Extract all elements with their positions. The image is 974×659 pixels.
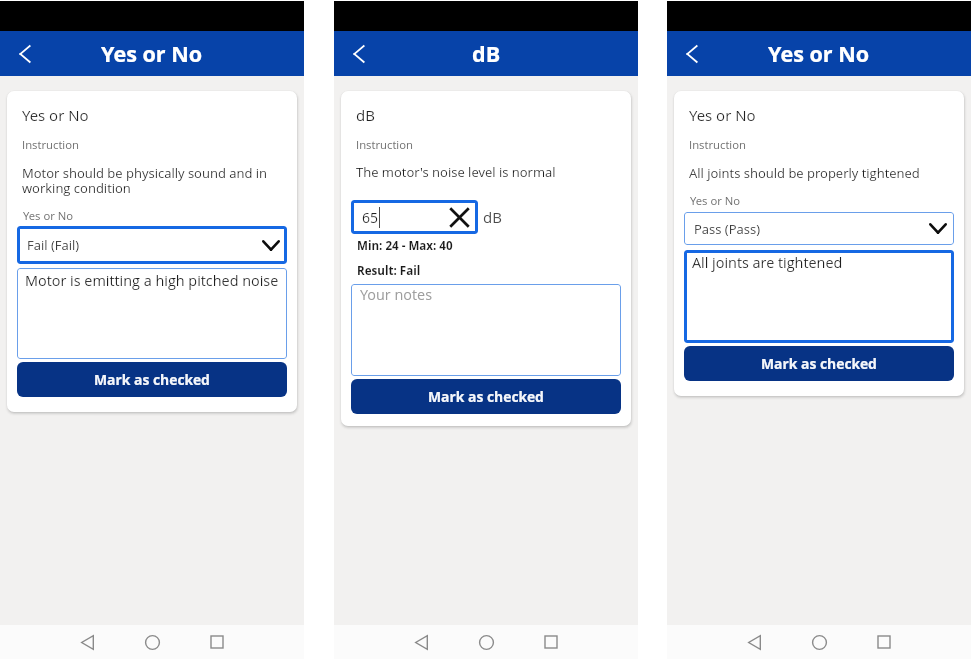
staticText: Instruction <box>22 137 79 152</box>
staticText: Min: 24 - Max: 40 <box>357 238 453 254</box>
staticText: Yes or No <box>690 193 741 208</box>
staticText: Motor is emitting a high pitched noise <box>25 271 279 291</box>
staticText: Yes or No <box>689 105 756 125</box>
staticText: Instruction <box>356 137 413 152</box>
staticText: Mark as checked <box>761 354 877 373</box>
staticText: Yes or No <box>22 105 89 125</box>
staticText: Result: Fail <box>357 263 421 279</box>
button[interactable]: Back <box>334 31 384 76</box>
button[interactable]: Your notes <box>351 284 621 376</box>
staticText: Yes or No <box>23 208 74 223</box>
button[interactable]: Mark as checked <box>684 346 954 381</box>
button[interactable]: Mark as checked <box>351 379 621 414</box>
button[interactable]: Back <box>0 31 50 76</box>
staticText: All joints are tightened <box>692 253 843 273</box>
button[interactable]: Home <box>471 627 501 657</box>
staticText: dB <box>472 39 501 68</box>
button[interactable]: 65 <box>351 200 478 234</box>
staticText: All joints should be properly tightened <box>689 164 920 182</box>
button[interactable]: Pass (Pass) <box>684 212 954 245</box>
staticText: 65 <box>362 208 379 227</box>
staticText: The motor's noise level is normal <box>356 163 556 181</box>
staticText: Fail (Fail) <box>27 236 80 254</box>
staticText: dB <box>356 105 375 125</box>
staticText: Yes or No <box>101 39 203 68</box>
staticText: Yes or No <box>768 39 870 68</box>
button[interactable]: All joints are tightened <box>684 250 954 343</box>
button[interactable]: Back <box>406 627 436 657</box>
button[interactable]: Back <box>667 31 717 76</box>
button[interactable]: Recents <box>202 627 232 657</box>
staticText: dB <box>483 207 502 227</box>
button[interactable]: Back <box>72 627 102 657</box>
button[interactable]: Clear <box>449 207 470 228</box>
button[interactable]: Home <box>804 627 834 657</box>
staticText: Motor should be physically sound and in … <box>22 164 287 197</box>
button[interactable]: Mark as checked <box>17 362 287 397</box>
staticText: Mark as checked <box>94 370 210 389</box>
staticText: Pass (Pass) <box>694 220 760 238</box>
button[interactable]: Home <box>137 627 167 657</box>
staticText: Mark as checked <box>428 387 544 406</box>
button[interactable]: Recents <box>869 627 899 657</box>
button[interactable]: Recents <box>536 627 566 657</box>
button[interactable]: Back <box>739 627 769 657</box>
button[interactable]: Fail (Fail) <box>17 226 287 264</box>
staticText: Instruction <box>689 137 746 152</box>
button[interactable]: Motor is emitting a high pitched noise <box>17 268 287 359</box>
staticText: Your notes <box>360 285 433 305</box>
